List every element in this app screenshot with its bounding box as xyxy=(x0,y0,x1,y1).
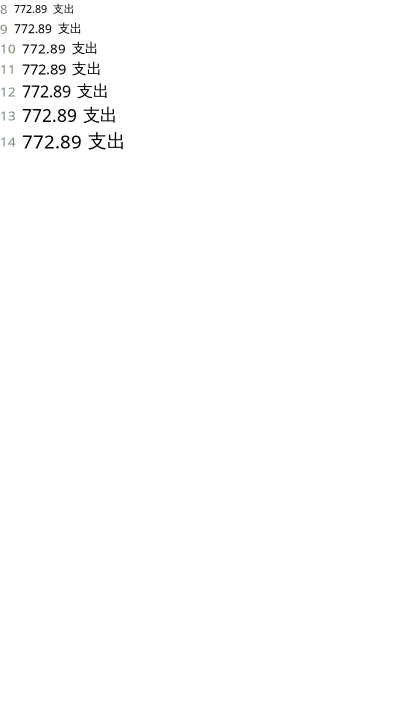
staticText: 10 xyxy=(0,39,16,57)
staticText: 14 xyxy=(0,132,16,150)
staticText: 13 xyxy=(0,106,16,124)
staticText: 12 xyxy=(0,82,16,100)
staticText: 11 xyxy=(0,60,16,78)
staticText: 8 xyxy=(0,0,8,18)
staticText: 9 xyxy=(0,20,8,37)
